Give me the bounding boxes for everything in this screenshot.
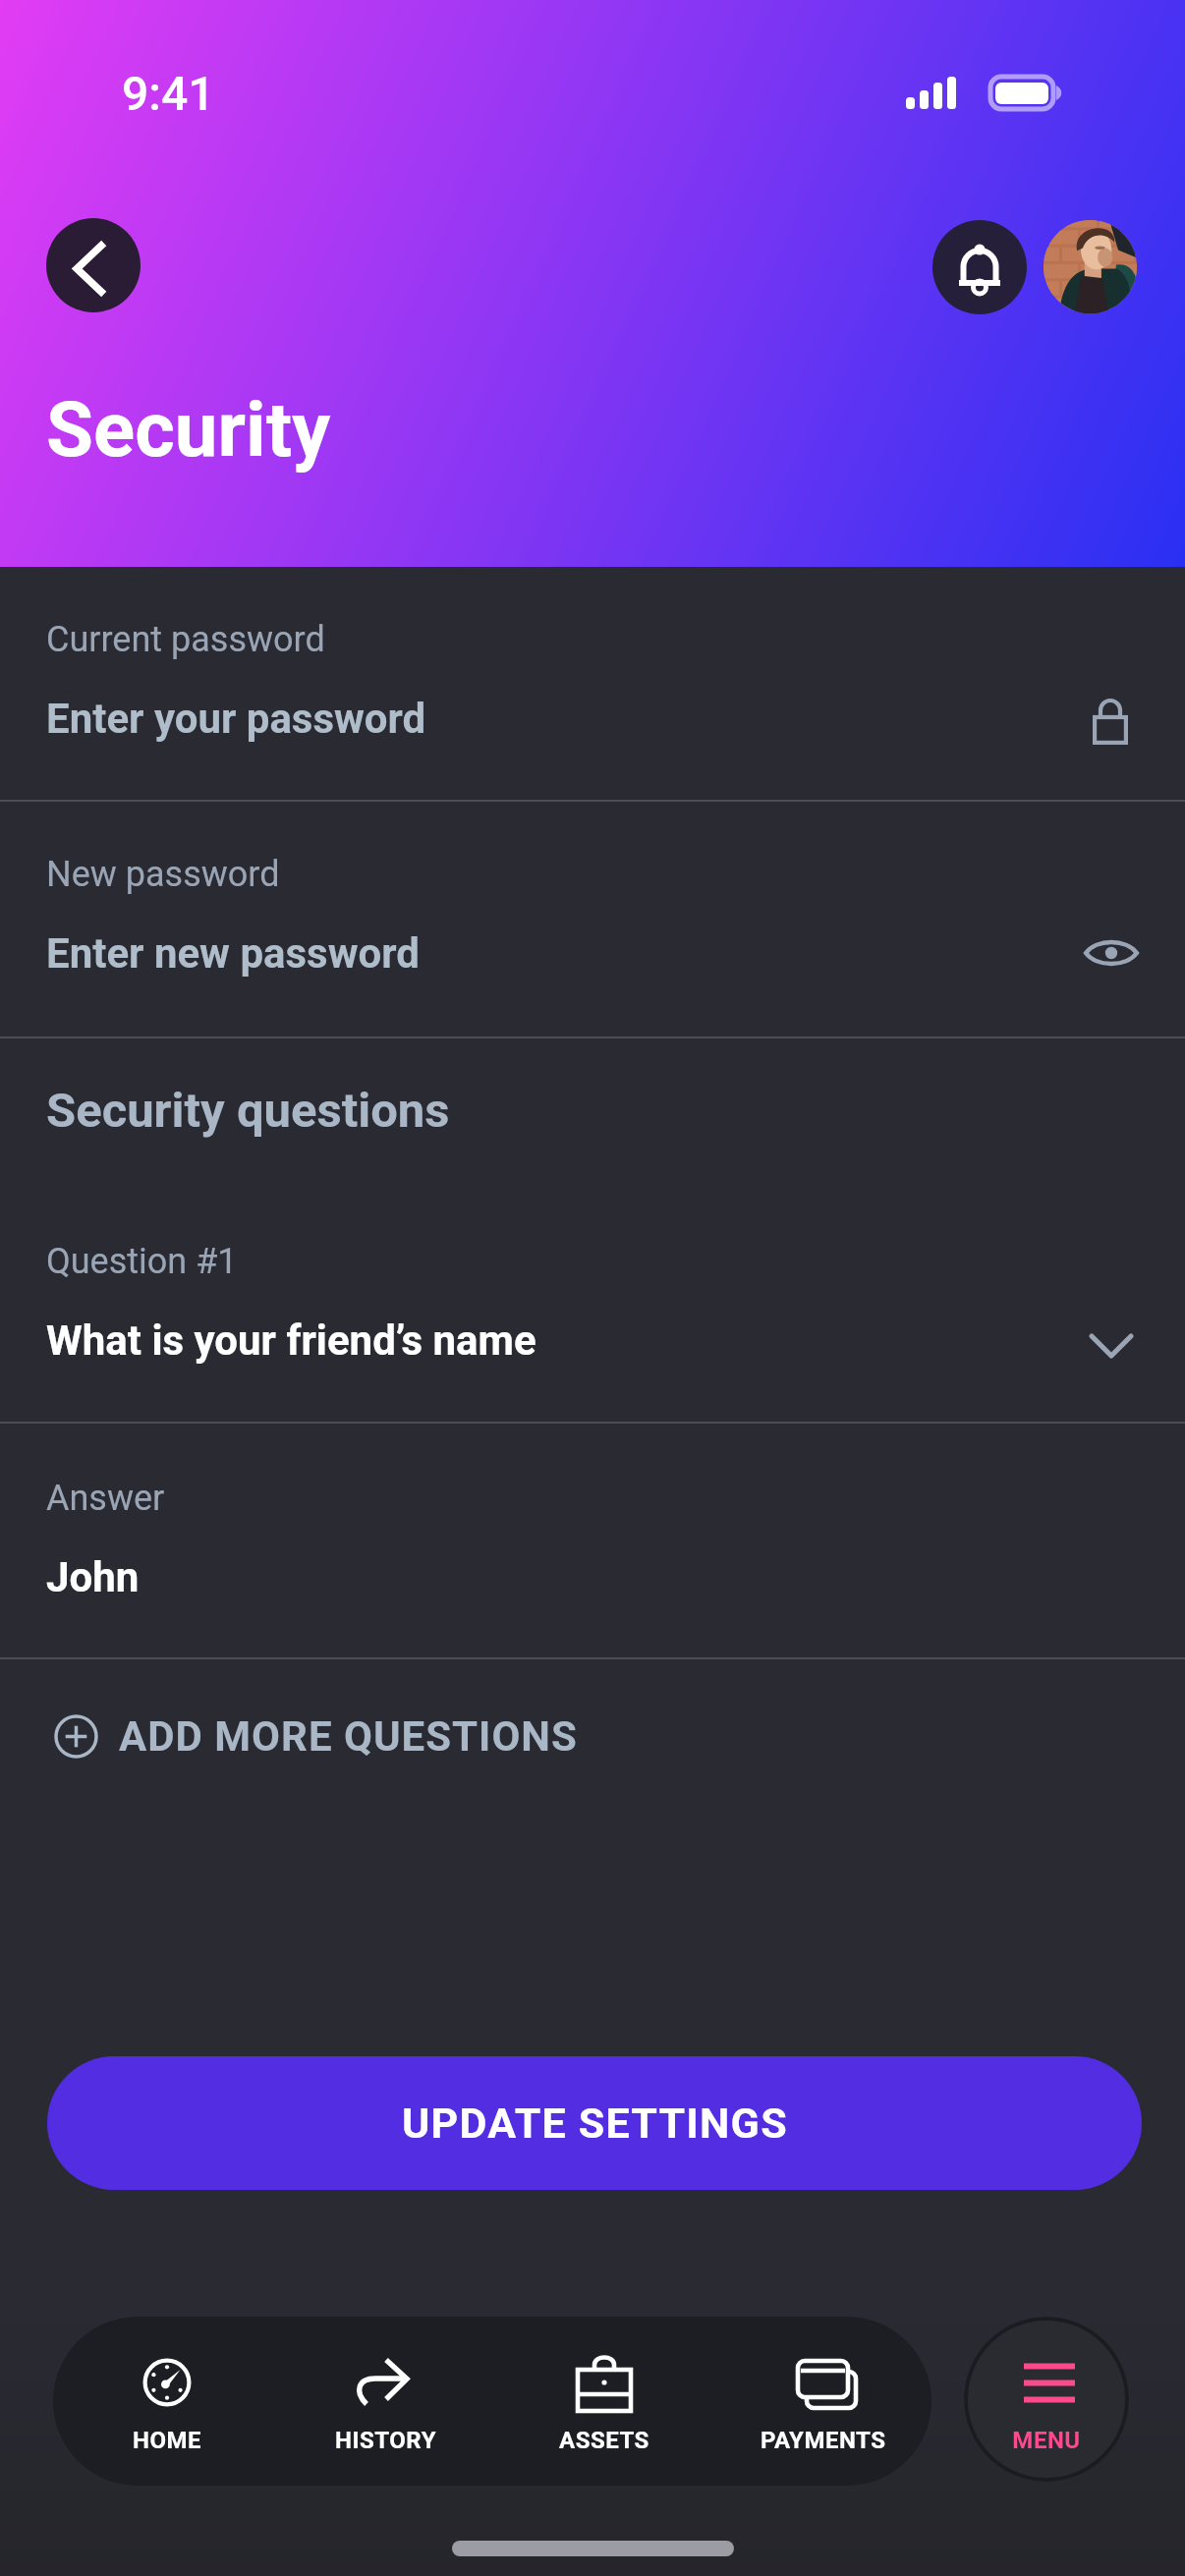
- staticText: Enter new password: [46, 929, 420, 978]
- button[interactable]: HOME: [79, 2355, 255, 2483]
- staticText: HISTORY: [335, 2427, 437, 2454]
- staticText: Security questions: [46, 1083, 450, 1139]
- button[interactable]: Profile: [1044, 220, 1137, 313]
- button[interactable]: Show password: [1072, 914, 1151, 992]
- staticText: What is your friend’s name: [46, 1316, 536, 1365]
- button[interactable]: Notifications: [932, 220, 1027, 314]
- staticText: MENU: [964, 2427, 1129, 2454]
- staticText: 9:41: [122, 66, 215, 121]
- button[interactable]: Password is hidden: [1071, 683, 1150, 761]
- button[interactable]: Question #1: [0, 1189, 1185, 1422]
- staticText: UPDATE SETTINGS: [402, 2099, 788, 2148]
- staticText: PAYMENTS: [761, 2427, 886, 2454]
- button[interactable]: Answer: [0, 1426, 1185, 1658]
- button[interactable]: ADD MORE QUESTIONS: [0, 1657, 1185, 1815]
- staticText: ADD MORE QUESTIONS: [119, 1712, 578, 1761]
- button[interactable]: PAYMENTS: [735, 2355, 912, 2483]
- staticText: Security: [46, 385, 331, 475]
- staticText: John: [46, 1553, 140, 1601]
- button[interactable]: UPDATE SETTINGS: [47, 2056, 1142, 2190]
- staticText: Current password: [46, 619, 325, 660]
- staticText: ASSETS: [559, 2427, 649, 2454]
- button[interactable]: New password: [0, 802, 1185, 1035]
- button[interactable]: Current password: [0, 567, 1185, 800]
- staticText: Question #1: [46, 1241, 238, 1282]
- button[interactable]: Back: [46, 218, 141, 312]
- button[interactable]: Choose question: [1072, 1307, 1151, 1385]
- button[interactable]: HISTORY: [298, 2355, 475, 2483]
- button[interactable]: Menu: [964, 2317, 1129, 2482]
- staticText: Answer: [46, 1478, 165, 1519]
- staticText: HOME: [133, 2427, 202, 2454]
- button[interactable]: ASSETS: [516, 2355, 693, 2483]
- staticText: New password: [46, 854, 280, 895]
- staticText: Enter your password: [46, 695, 426, 743]
